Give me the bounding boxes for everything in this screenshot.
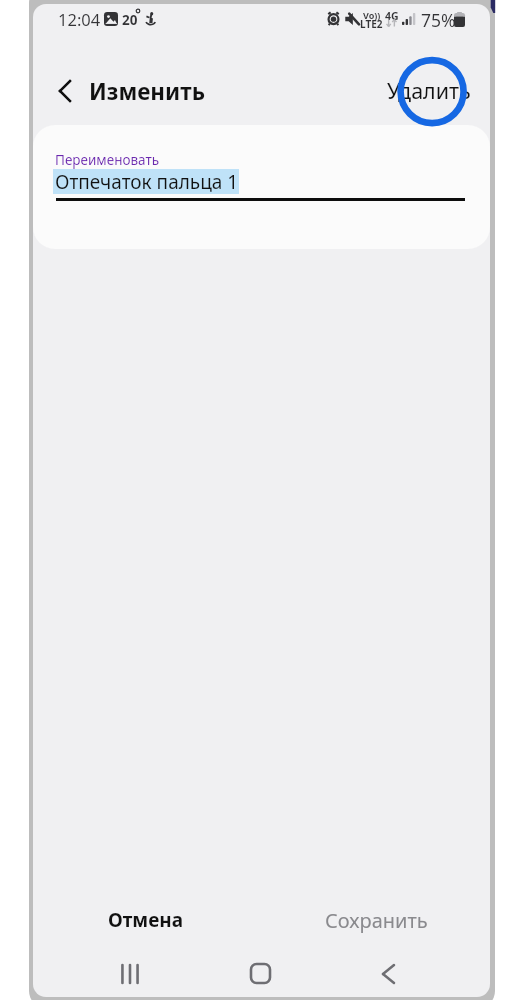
- button[interactable]: Последние приложения: [100, 951, 160, 996]
- staticText: Переименовать: [55, 151, 160, 169]
- button[interactable]: Отмена: [33, 891, 260, 949]
- staticText: LTE2: [360, 17, 383, 31]
- staticText: Удалить: [387, 76, 471, 105]
- staticText: 4G: [385, 9, 399, 23]
- staticText: Отмена: [108, 907, 184, 933]
- staticText: 12:04: [58, 8, 101, 30]
- staticText: 20: [122, 11, 138, 29]
- staticText: 75%: [421, 8, 456, 32]
- staticText: Vo)): [363, 9, 381, 21]
- button[interactable]: Удалить: [373, 66, 483, 114]
- button[interactable]: Главный экран: [230, 951, 290, 996]
- button[interactable]: Назад: [358, 951, 418, 996]
- staticText: Изменить: [89, 76, 205, 107]
- button[interactable]: Изменить: [89, 67, 205, 115]
- button[interactable]: Назад: [45, 67, 85, 114]
- button[interactable]: Сохранить: [262, 891, 490, 949]
- staticText: Сохранить: [325, 907, 428, 934]
- staticText: Отпечаток пальца 1: [55, 169, 239, 194]
